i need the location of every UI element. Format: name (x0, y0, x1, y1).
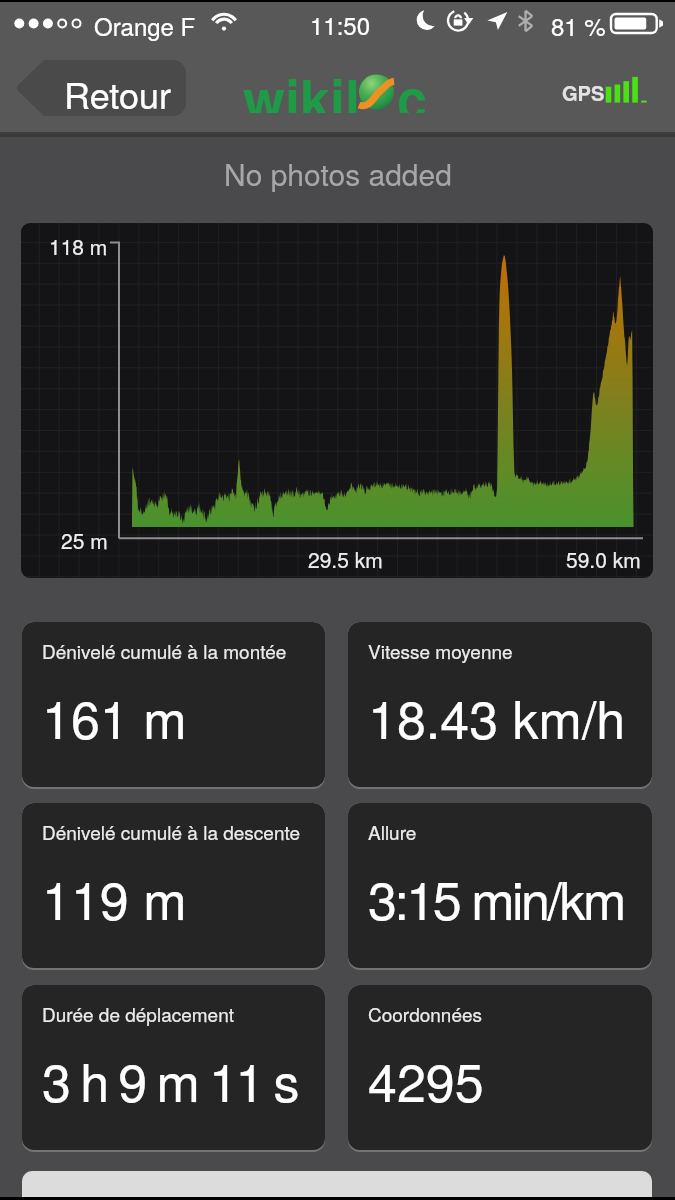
staticText: 3 h 9 m 11 s (42, 1042, 297, 1116)
staticText: c (397, 58, 428, 113)
staticText: Durée de déplacement (42, 1000, 235, 1027)
staticText: 18.43 km/h (368, 679, 626, 753)
button[interactable] (22, 1171, 652, 1200)
button[interactable]: Allure (348, 803, 652, 970)
button[interactable]: GPS signal strength (560, 75, 648, 105)
staticText: No photos added (224, 152, 452, 195)
staticText: 29.5 km (308, 544, 383, 574)
staticText: 11:50 (310, 7, 371, 41)
button[interactable]: Vitesse moyenne (348, 622, 652, 789)
button[interactable]: Durée de déplacement (22, 985, 325, 1152)
staticText: GPS (562, 78, 605, 107)
staticText: Retour (64, 68, 171, 120)
staticText: 4295 (368, 1042, 484, 1116)
staticText: Dénivelé cumulé à la montée (42, 637, 287, 664)
button[interactable]: Coordonnées (348, 985, 652, 1152)
staticText: Dénivelé cumulé à la descente (42, 818, 301, 845)
staticText: 59.0 km (566, 544, 641, 574)
staticText: Vitesse moyenne (368, 637, 513, 664)
button[interactable]: Dénivelé cumulé à la descente (22, 803, 325, 970)
staticText: Orange F (94, 8, 196, 42)
staticText: Coordonnées (368, 1000, 483, 1027)
staticText: wikil (243, 58, 361, 113)
button[interactable]: Dénivelé cumulé à la montée (22, 622, 325, 789)
button[interactable]: 118 m (21, 223, 653, 578)
staticText: 81 % (551, 8, 606, 42)
staticText: 161 m (42, 679, 187, 753)
staticText: 118 m (49, 231, 108, 261)
staticText: Allure (368, 818, 417, 845)
button[interactable]: Wikiloc (243, 58, 428, 113)
button[interactable]: Retour (15, 60, 186, 116)
staticText: 119 m (42, 860, 187, 934)
staticText: 25 m (61, 525, 108, 555)
staticText: 3:15 min/km (368, 860, 624, 934)
